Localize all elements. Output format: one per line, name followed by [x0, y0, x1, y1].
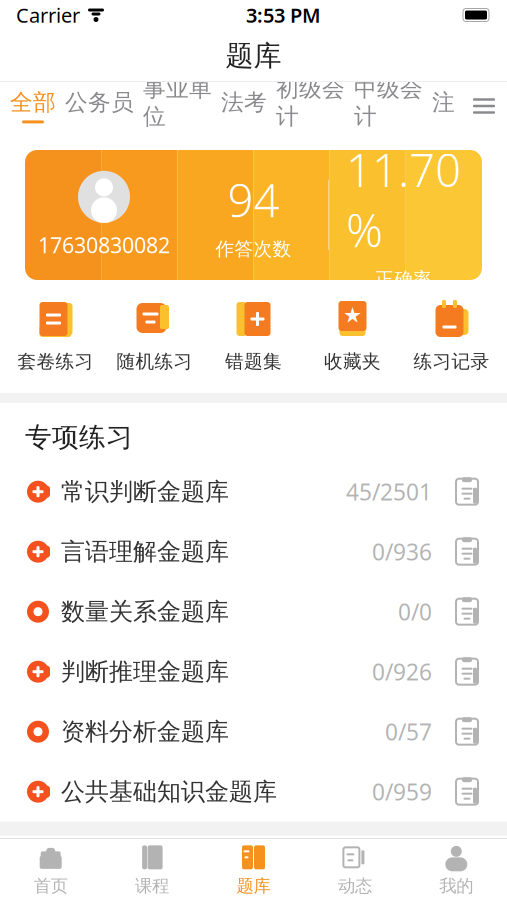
staticText: 公务员 — [65, 89, 134, 116]
staticText: 套卷练习 — [17, 350, 93, 373]
button[interactable]: 全部 — [10, 85, 56, 127]
button[interactable]: 言语理解金题库 — [0, 522, 507, 582]
button[interactable]: 公务员 — [65, 85, 134, 127]
button[interactable]: 我的 — [406, 837, 507, 900]
staticText: 题库 — [236, 875, 270, 897]
staticText: ★ — [343, 303, 362, 327]
staticText: 首页 — [34, 875, 68, 897]
staticText: 错题集 — [225, 350, 282, 373]
button[interactable]: 初级会计 — [276, 71, 345, 141]
staticText: 常识判断金题库 — [61, 477, 229, 506]
staticText: 事业单位 — [143, 75, 212, 130]
staticText: 动态 — [338, 875, 372, 897]
button[interactable]: 练习记录 — [402, 294, 501, 377]
staticText: 法考 — [221, 89, 267, 116]
staticText: 11.70% — [346, 139, 461, 260]
button[interactable]: 随机练习 — [105, 294, 204, 377]
staticText: 注 — [432, 89, 455, 116]
button[interactable]: 法考 — [221, 85, 267, 127]
button[interactable]: 课程 — [101, 837, 203, 900]
staticText: 作答次数 — [215, 238, 291, 260]
staticText: 17630830082 — [38, 231, 170, 259]
staticText: 公共基础知识金题库 — [61, 777, 277, 806]
staticText: 3:53 PM — [246, 2, 321, 28]
staticText: 练习记录 — [413, 350, 489, 373]
button[interactable]: 事业单位 — [143, 71, 212, 141]
button[interactable]: 中级会计 — [354, 71, 423, 141]
staticText: 0/959 — [372, 777, 432, 807]
staticText: Carrier — [16, 2, 80, 28]
button[interactable]: ★ — [303, 294, 402, 377]
staticText: 全部 — [10, 89, 56, 116]
button[interactable]: 注 — [432, 85, 455, 127]
staticText: 中级会计 — [354, 75, 423, 130]
staticText: 我的 — [439, 875, 473, 897]
staticText: 判断推理金题库 — [61, 657, 229, 686]
button[interactable]: 公共基础知识金题库 — [0, 762, 507, 822]
button[interactable]: 动态 — [304, 837, 406, 900]
staticText: 正确率 — [375, 268, 432, 291]
staticText: 收藏夹 — [324, 350, 381, 373]
staticText: 0/57 — [385, 717, 432, 747]
button[interactable]: 数量关系金题库 — [0, 582, 507, 642]
staticText: 专项练习 — [25, 421, 133, 454]
staticText: 45/2501 — [346, 477, 432, 507]
button[interactable]: 判断推理金题库 — [0, 642, 507, 702]
staticText: 题库 — [225, 39, 281, 73]
staticText: 0/936 — [372, 537, 432, 567]
staticText: 资料分析金题库 — [61, 717, 229, 746]
button[interactable]: 全部分类 — [461, 83, 507, 129]
button[interactable]: 首页 — [0, 837, 101, 900]
staticText: 随机练习 — [116, 350, 192, 373]
button[interactable]: 常识判断金题库 — [0, 462, 507, 522]
staticText: 94 — [227, 169, 279, 230]
staticText: 数量关系金题库 — [61, 597, 229, 626]
staticText: 言语理解金题库 — [61, 537, 229, 566]
staticText: 0/0 — [398, 597, 432, 627]
button[interactable]: 题库 — [203, 837, 304, 900]
button[interactable]: 资料分析金题库 — [0, 702, 507, 762]
staticText: 初级会计 — [276, 75, 345, 130]
button[interactable]: 套卷练习 — [6, 294, 105, 377]
staticText: 课程 — [135, 875, 169, 897]
button[interactable]: 错题集 — [204, 294, 303, 377]
staticText: 0/926 — [372, 657, 432, 687]
